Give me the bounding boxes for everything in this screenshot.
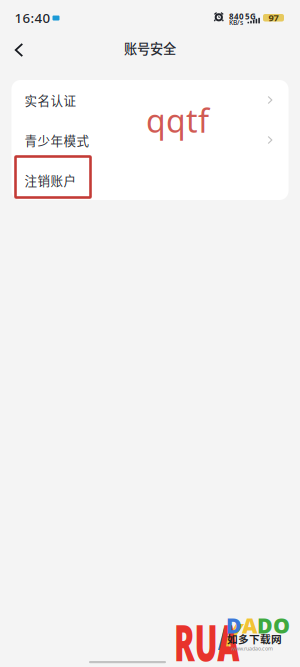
- staticText: 97: [268, 12, 278, 24]
- staticText: D: [257, 611, 273, 639]
- staticText: 账号安全: [124, 38, 176, 57]
- staticText: O: [273, 611, 290, 639]
- staticText: 5G: [245, 11, 256, 22]
- staticText: RUA: [174, 609, 251, 657]
- staticText: A: [242, 611, 257, 639]
- staticText: 如多下载网: [227, 631, 282, 646]
- staticText: D: [226, 611, 242, 639]
- staticText: 实名认证: [24, 91, 76, 109]
- staticText: 16:40: [14, 9, 50, 27]
- button[interactable]: 注销账户: [11, 160, 288, 200]
- staticText: KB/s: [229, 18, 243, 27]
- staticText: 青少年模式: [24, 131, 89, 149]
- button[interactable]: 实名认证: [11, 80, 288, 120]
- staticText: 注销账户: [24, 171, 76, 189]
- button[interactable]: 青少年模式: [11, 120, 288, 160]
- staticText: qqtf: [146, 99, 209, 141]
- staticText: 840: [229, 11, 244, 22]
- staticText: www.ruadao.com: [231, 645, 273, 652]
- button[interactable]: Back: [6, 37, 32, 63]
